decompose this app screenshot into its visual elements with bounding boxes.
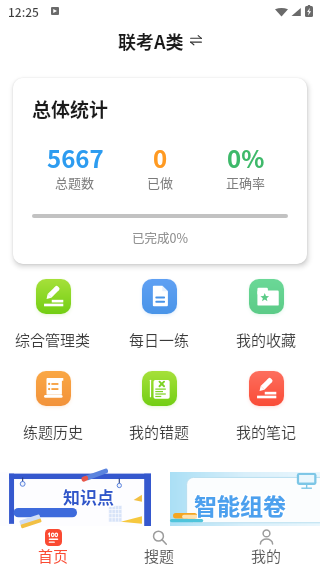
staticText: 我的: [251, 545, 282, 567]
button[interactable]: 我的收藏: [213, 279, 320, 351]
staticText: 联考A类: [118, 28, 184, 52]
staticText: 0: [153, 140, 168, 175]
staticText: 智能组卷: [193, 488, 285, 521]
staticText: 总体统计: [32, 95, 109, 123]
button[interactable]: 我的: [213, 529, 320, 568]
staticText: 智能组卷: [195, 487, 287, 520]
staticText: 智能组卷: [194, 488, 286, 521]
staticText: 已完成0%: [13, 228, 307, 246]
staticText: 12:25: [8, 3, 39, 20]
button[interactable]: 综合管理类: [0, 279, 106, 351]
staticText: 首页: [38, 545, 69, 567]
button[interactable]: 联考A类: [112, 25, 208, 55]
staticText: 综合管理类: [15, 329, 91, 351]
staticText: 知识点: [64, 484, 115, 509]
button[interactable]: 我的错题: [106, 371, 213, 443]
staticText: 知识点: [62, 485, 113, 510]
button[interactable]: 练题历史: [0, 371, 106, 443]
staticText: 练题历史: [23, 421, 84, 443]
button[interactable]: 我的笔记: [213, 371, 320, 443]
staticText: 已做: [147, 173, 174, 192]
staticText: 每日一练: [129, 329, 190, 351]
staticText: 0%: [227, 140, 265, 175]
other: Switch exam category: [190, 34, 202, 46]
staticText: 知识点: [63, 483, 114, 508]
button[interactable]: 智能组卷: [170, 472, 320, 526]
staticText: 我的错题: [129, 421, 190, 443]
staticText: 5667: [47, 140, 104, 175]
button[interactable]: 知识点: [0, 472, 151, 526]
staticText: 搜题: [144, 545, 175, 567]
staticText: 智能组卷: [194, 487, 286, 520]
staticText: 知识点: [64, 485, 115, 510]
staticText: 我的笔记: [236, 421, 297, 443]
button[interactable]: 首页: [0, 529, 106, 568]
staticText: 我的收藏: [236, 329, 297, 351]
button[interactable]: 搜题: [106, 529, 213, 568]
staticText: 智能组卷: [195, 488, 287, 521]
staticText: 智能组卷: [193, 489, 285, 522]
staticText: 正确率: [226, 173, 266, 192]
staticText: 总题数: [55, 173, 95, 192]
button[interactable]: 每日一练: [106, 279, 213, 351]
button[interactable]: 总体统计: [13, 78, 307, 264]
staticText: 知识点: [62, 483, 113, 508]
staticText: 知识点: [63, 485, 114, 510]
staticText: 智能组卷: [193, 487, 285, 520]
staticText: 知识点: [62, 484, 113, 509]
staticText: 智能组卷: [195, 489, 287, 522]
staticText: 知识点: [64, 483, 115, 508]
staticText: 智能组卷: [194, 489, 286, 522]
staticText: 知识点: [63, 484, 114, 509]
